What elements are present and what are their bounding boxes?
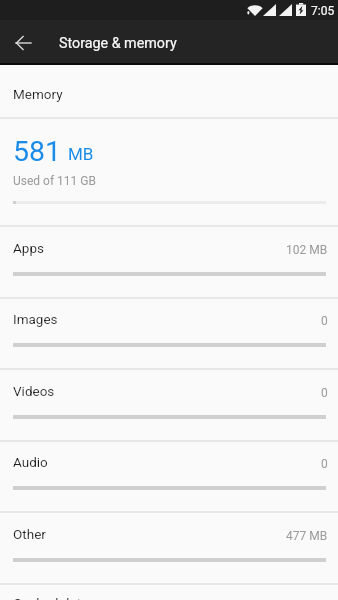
button[interactable]: Cached data: [0, 583, 338, 600]
button[interactable]: Other: [0, 512, 338, 583]
staticText: Storage & memory: [59, 35, 177, 52]
staticText: 477 MB: [286, 529, 328, 543]
button[interactable]: Images: [0, 297, 338, 368]
staticText: Videos: [13, 383, 55, 399]
staticText: 7:05: [311, 4, 335, 18]
staticText: MB: [68, 144, 94, 164]
staticText: 581: [13, 135, 62, 168]
staticText: Used of 111 GB: [13, 174, 96, 188]
button[interactable]: 581: [0, 118, 338, 225]
button[interactable]: Apps: [0, 226, 338, 297]
staticText: Memory: [13, 86, 63, 102]
staticText: 102 MB: [286, 243, 328, 257]
staticText: Audio: [13, 454, 48, 470]
button[interactable]: Videos: [0, 369, 338, 440]
staticText: Apps: [13, 240, 44, 256]
staticText: 0: [321, 386, 328, 400]
staticText: Cached data: [13, 595, 89, 600]
staticText: 0: [321, 457, 328, 471]
staticText: 0: [321, 314, 328, 328]
button[interactable]: Memory: [0, 64, 338, 117]
staticText: Other: [13, 526, 46, 542]
button[interactable]: Audio: [0, 440, 338, 511]
button[interactable]: Navigate up: [0, 20, 46, 63]
staticText: Images: [13, 311, 58, 327]
